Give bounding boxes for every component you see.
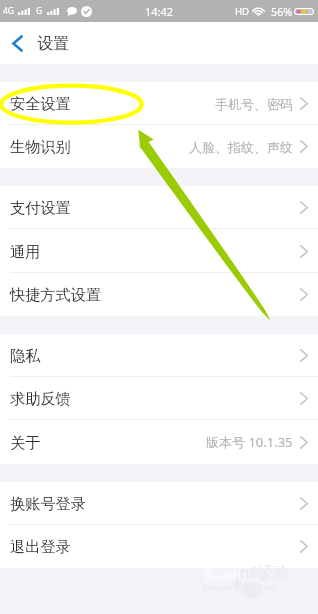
staticText: 通用 [10,242,41,261]
staticText: G [36,5,43,17]
staticText: 求助反馈 [10,389,71,408]
staticText: 退出登录 [10,537,71,556]
button[interactable]: 快捷方式设置 [0,273,318,316]
button[interactable]: 求助反馈 [0,377,318,420]
staticText: 安全设置 [10,94,71,113]
staticText: 版本号 10.1.35 [206,433,293,451]
button[interactable]: Back [0,22,34,64]
staticText: 快捷方式设置 [10,285,102,304]
staticText: HD [235,5,250,18]
button[interactable]: 通用 [0,229,318,273]
staticText: 14:42 [145,4,174,19]
button[interactable]: 支付设置 [0,186,318,229]
staticText: 经验 [257,563,289,583]
button[interactable]: 生物识别 [0,125,318,168]
staticText: 隐私 [10,346,41,365]
staticText: 手机号、密码 [215,96,293,112]
button[interactable]: 关于 [0,420,318,464]
staticText: 4G [3,5,15,17]
staticText: 56% [271,4,293,19]
staticText: 人脸、指纹、声纹 [189,139,293,155]
staticText: 设置 [37,33,70,53]
button[interactable]: 退出登录 [0,525,318,568]
button[interactable]: 安全设置 [0,82,318,125]
staticText: 关于 [10,433,41,452]
button[interactable]: 隐私 [0,334,318,377]
staticText: 生物识别 [10,137,71,156]
staticText: 换账号登录 [10,494,86,513]
button[interactable]: 换账号登录 [0,482,318,525]
staticText: Baidu [203,564,247,586]
staticText: 支付设置 [10,198,71,217]
staticText: jingyan.baidu.com [203,582,277,594]
